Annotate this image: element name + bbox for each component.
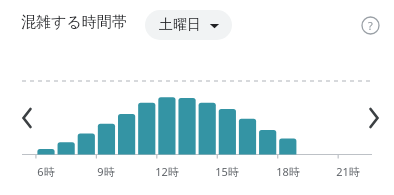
staticText: 18時 (276, 164, 300, 179)
button[interactable]: 次の時間帯 (361, 103, 389, 133)
staticText: 土曜日 (159, 16, 201, 34)
staticText: 6時 (37, 164, 55, 179)
staticText: 21時 (336, 164, 360, 179)
button[interactable]: 前の時間帯 (14, 103, 42, 133)
button[interactable]: ヘルプ (358, 13, 383, 38)
staticText: ? (368, 18, 373, 33)
staticText: 9時 (97, 164, 115, 179)
button[interactable]: 土曜日 (145, 10, 232, 40)
staticText: 混雑する時間帯 (21, 13, 127, 32)
staticText: 12時 (155, 164, 179, 179)
staticText: 15時 (215, 164, 239, 179)
